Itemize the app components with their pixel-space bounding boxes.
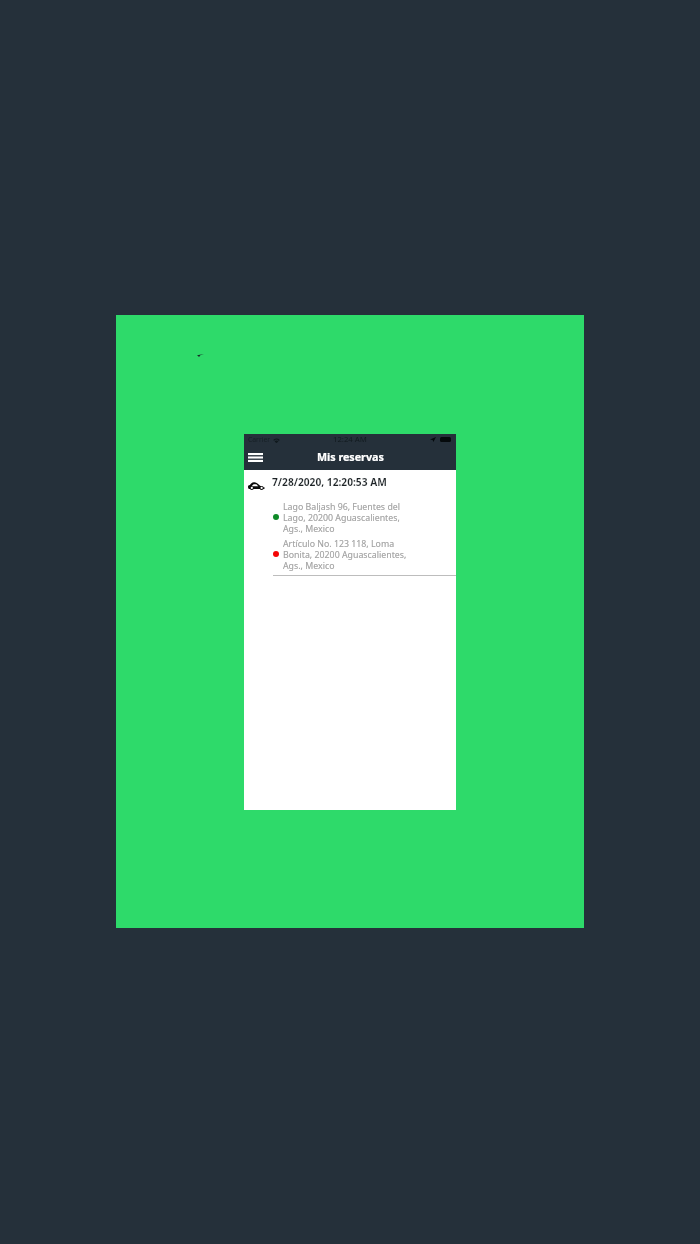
button[interactable]: Lago Baljash 96, Fuentes del Lago, 20200… — [244, 501, 456, 535]
staticText: 7/28/2020, 12:20:53 AM — [272, 475, 387, 489]
staticText: 12:24 AM — [333, 434, 367, 444]
button[interactable]: Open navigation menu — [246, 446, 265, 468]
button[interactable]: Artículo No. 123 118, Loma Bonita, 20200… — [244, 538, 456, 572]
staticText: Carrier — [248, 435, 271, 444]
staticText: Artículo No. 123 118, Loma Bonita, 20200… — [283, 538, 407, 572]
staticText: Lago Baljash 96, Fuentes del Lago, 20200… — [283, 501, 407, 535]
staticText: Mis reservas — [317, 450, 384, 465]
button[interactable]: 7/28/2020, 12:20:53 AM — [244, 475, 456, 489]
